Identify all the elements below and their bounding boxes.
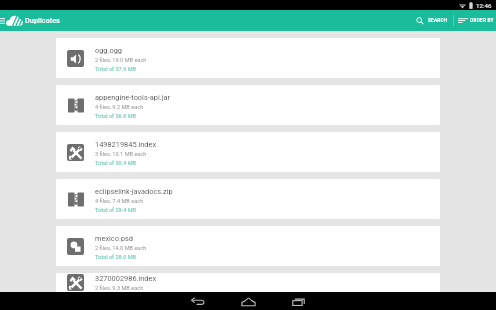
button[interactable]: mexico.psd [56, 226, 440, 266]
staticText: 4 files, 7.4 MB each [95, 198, 144, 205]
staticText: ORDER BY [470, 18, 494, 24]
button[interactable]: Home [230, 292, 266, 310]
button[interactable]: Back [180, 292, 216, 310]
button[interactable]: 3270002986.index [56, 273, 440, 292]
button[interactable]: eclipselink-javadocs.zip [56, 179, 440, 219]
staticText: 4 files, 9.2 MB each [95, 104, 144, 111]
staticText: Total of 30.4 MB [95, 160, 137, 167]
button[interactable]: Menu [0, 10, 5, 31]
staticText: 2 files, 19.0 MB each [95, 57, 147, 64]
staticText: Total of 29.4 MB [95, 207, 137, 214]
button[interactable]: appengine-tools-api.jar [56, 85, 440, 125]
staticText: Total of 36.8 MB [95, 113, 137, 120]
staticText: eclipselink-javadocs.zip [95, 187, 173, 196]
staticText: SEARCH [428, 18, 448, 24]
staticText: 1498219845.index [95, 140, 157, 149]
staticText: 3 files, 10.1 MB each [95, 151, 147, 158]
button[interactable]: ORDER BY [454, 17, 496, 24]
staticText: 3270002986.index [95, 274, 157, 283]
staticText: ogg.ogg [95, 46, 122, 55]
staticText: mexico.psd [95, 234, 134, 243]
staticText: appengine-tools-api.jar [95, 93, 170, 102]
button[interactable]: ogg.ogg [56, 38, 440, 78]
button[interactable]: SEARCH [412, 17, 453, 25]
button[interactable]: 1498219845.index [56, 132, 440, 172]
staticText: 2 files, 14.0 MB each [95, 245, 147, 252]
staticText: Duplicates [25, 16, 60, 25]
staticText: Total of 37.9 MB [95, 66, 137, 73]
staticText: 2 files, 9.3 MB each [95, 285, 144, 292]
staticText: 12:46 [476, 2, 492, 9]
staticText: Total of 28.0 MB [95, 254, 137, 261]
button[interactable]: Recents [280, 292, 316, 310]
